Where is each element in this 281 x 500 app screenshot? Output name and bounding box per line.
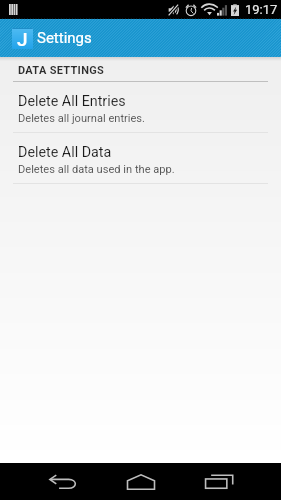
button[interactable]: Home	[102, 463, 180, 500]
button[interactable]: Navigate up	[0, 19, 92, 57]
button[interactable]: Delete All Entries	[0, 82, 281, 132]
staticText: Deletes all journal entries.	[18, 112, 146, 125]
staticText: Delete All Data	[18, 144, 112, 161]
button[interactable]: Delete All Data	[0, 133, 281, 183]
button[interactable]: Recent apps	[180, 463, 258, 500]
staticText: Deletes all data used in the app.	[18, 163, 175, 176]
staticText: J	[17, 28, 28, 49]
staticText: DATA SETTINGS	[18, 64, 105, 77]
button[interactable]: Back	[24, 463, 102, 500]
staticText: Delete All Entries	[18, 93, 126, 110]
staticText: 19:17	[245, 2, 278, 17]
staticText: Settings	[37, 29, 92, 47]
